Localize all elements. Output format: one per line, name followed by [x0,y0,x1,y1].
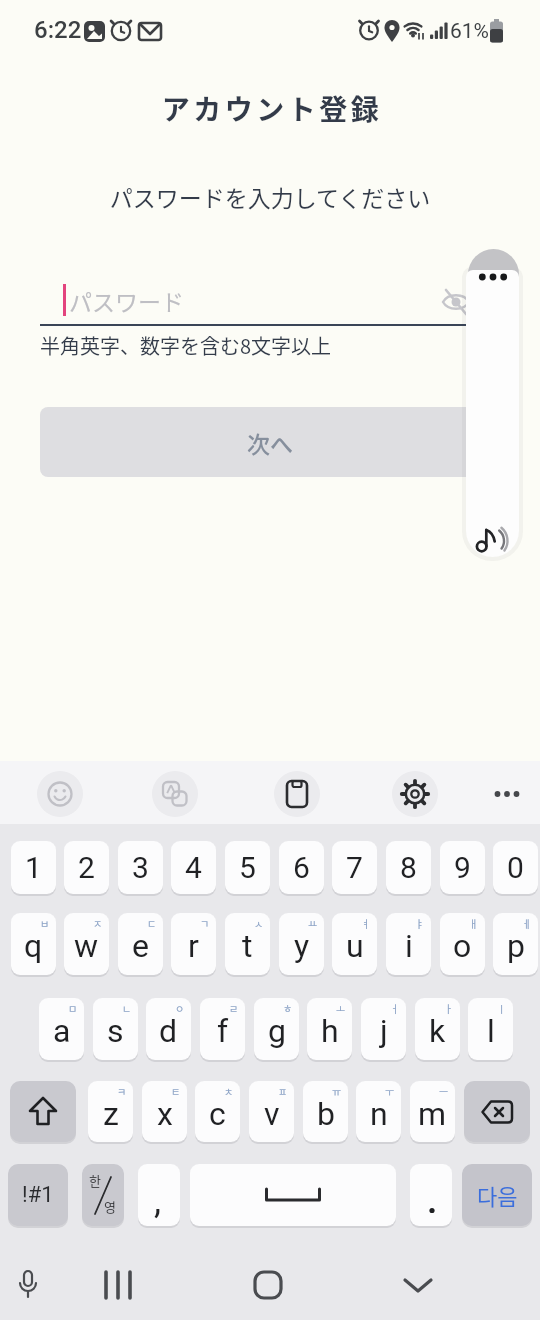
button[interactable] [10,1081,76,1142]
button[interactable]: p [493,913,538,975]
staticText: 2 [78,850,95,885]
button[interactable]: v [249,1081,294,1142]
staticText: ㅡ [439,1084,449,1098]
staticText: g [268,1012,286,1050]
button[interactable] [410,1164,452,1226]
staticText: , [154,1180,162,1222]
staticText: 次へ [247,426,293,459]
button[interactable]: f [200,998,245,1060]
button[interactable]: 6 [279,841,324,894]
staticText: ㅎ [283,1001,293,1015]
button[interactable]: 次へ [40,407,500,477]
staticText: ㅔ [522,916,532,930]
button[interactable] [190,1164,396,1226]
button[interactable]: c [195,1081,240,1142]
button[interactable] [1,1258,55,1312]
staticText: ㅋ [117,1084,127,1098]
button[interactable]: h [307,998,352,1060]
button[interactable]: w [64,913,109,975]
button[interactable]: r [171,913,216,975]
button[interactable] [485,771,529,817]
button[interactable]: !#1 [8,1164,68,1226]
button[interactable]: i [386,913,431,975]
staticText: 다음 [477,1179,518,1211]
staticText: 0 [507,850,524,885]
button[interactable]: j [361,998,406,1060]
staticText: 半角英字、数字を含む8文字以上 [40,331,332,360]
staticText: i [405,927,413,965]
staticText: ㅊ [224,1084,234,1098]
button[interactable]: y [279,913,324,975]
button[interactable]: k [415,998,460,1060]
button[interactable] [391,1258,445,1312]
staticText: v [264,1095,280,1133]
staticText: ㅇ [175,1001,185,1015]
button[interactable]: 7 [332,841,377,894]
button[interactable]: q [11,913,56,975]
staticText: ㅁ [68,1001,78,1015]
button[interactable]: x [142,1081,187,1142]
button[interactable] [91,1258,145,1312]
button[interactable]: z [88,1081,133,1142]
button[interactable]: u [332,913,377,975]
button[interactable] [37,771,83,817]
staticText: f [217,1012,229,1050]
staticText: 3 [132,850,149,885]
staticText: 7 [346,850,363,885]
button[interactable]: 2 [64,841,109,894]
button[interactable]: m [410,1081,455,1142]
button[interactable]: n [356,1081,401,1142]
staticText: 4 [185,850,202,885]
button[interactable]: 8 [386,841,431,894]
button[interactable]: g [254,998,299,1060]
staticText: c [209,1095,226,1133]
staticText: d [159,1012,178,1050]
button[interactable]: 1 [11,841,56,894]
button[interactable] [392,771,438,817]
staticText: 61% [450,19,489,44]
staticText: b [317,1095,335,1133]
button[interactable]: 4 [171,841,216,894]
button[interactable]: 한 [82,1164,124,1226]
staticText: 9 [454,850,471,885]
button[interactable]: 5 [225,841,270,894]
staticText: o [453,927,472,965]
button[interactable]: 3 [118,841,163,894]
button[interactable] [152,771,198,817]
staticText: パスワードを入力してください [0,180,540,213]
button[interactable]: パスワード [40,280,500,326]
staticText: x [157,1095,173,1133]
button[interactable] [437,284,475,320]
button[interactable]: e [118,913,163,975]
staticText: ㅅ [254,916,264,930]
button[interactable]: 9 [440,841,485,894]
staticText: m [418,1095,447,1133]
button[interactable]: d [146,998,191,1060]
button[interactable]: 다음 [462,1164,532,1226]
button[interactable]: b [303,1081,348,1142]
staticText: p [507,927,525,965]
staticText: z [103,1095,119,1133]
staticText: ㅍ [278,1084,288,1098]
staticText: 8 [400,850,417,885]
staticText: ㅏ [444,1001,454,1015]
button[interactable]: a [39,998,84,1060]
button[interactable] [466,270,519,557]
button[interactable] [241,1258,295,1312]
staticText: ㄱ [200,916,210,930]
staticText: ㅜ [385,1084,395,1098]
button[interactable] [274,771,320,817]
button[interactable]: l [468,998,513,1060]
button[interactable]: o [440,913,485,975]
button[interactable] [464,1081,530,1142]
button[interactable]: t [225,913,270,975]
staticText: 5 [239,850,256,885]
button[interactable]: 0 [493,841,538,894]
button[interactable]: , [138,1164,180,1226]
staticText: u [346,927,364,965]
staticText: h [321,1012,339,1050]
staticText: j [380,1012,388,1050]
button[interactable]: s [93,998,138,1060]
staticText: r [188,927,199,965]
staticText: ㅠ [332,1084,342,1098]
